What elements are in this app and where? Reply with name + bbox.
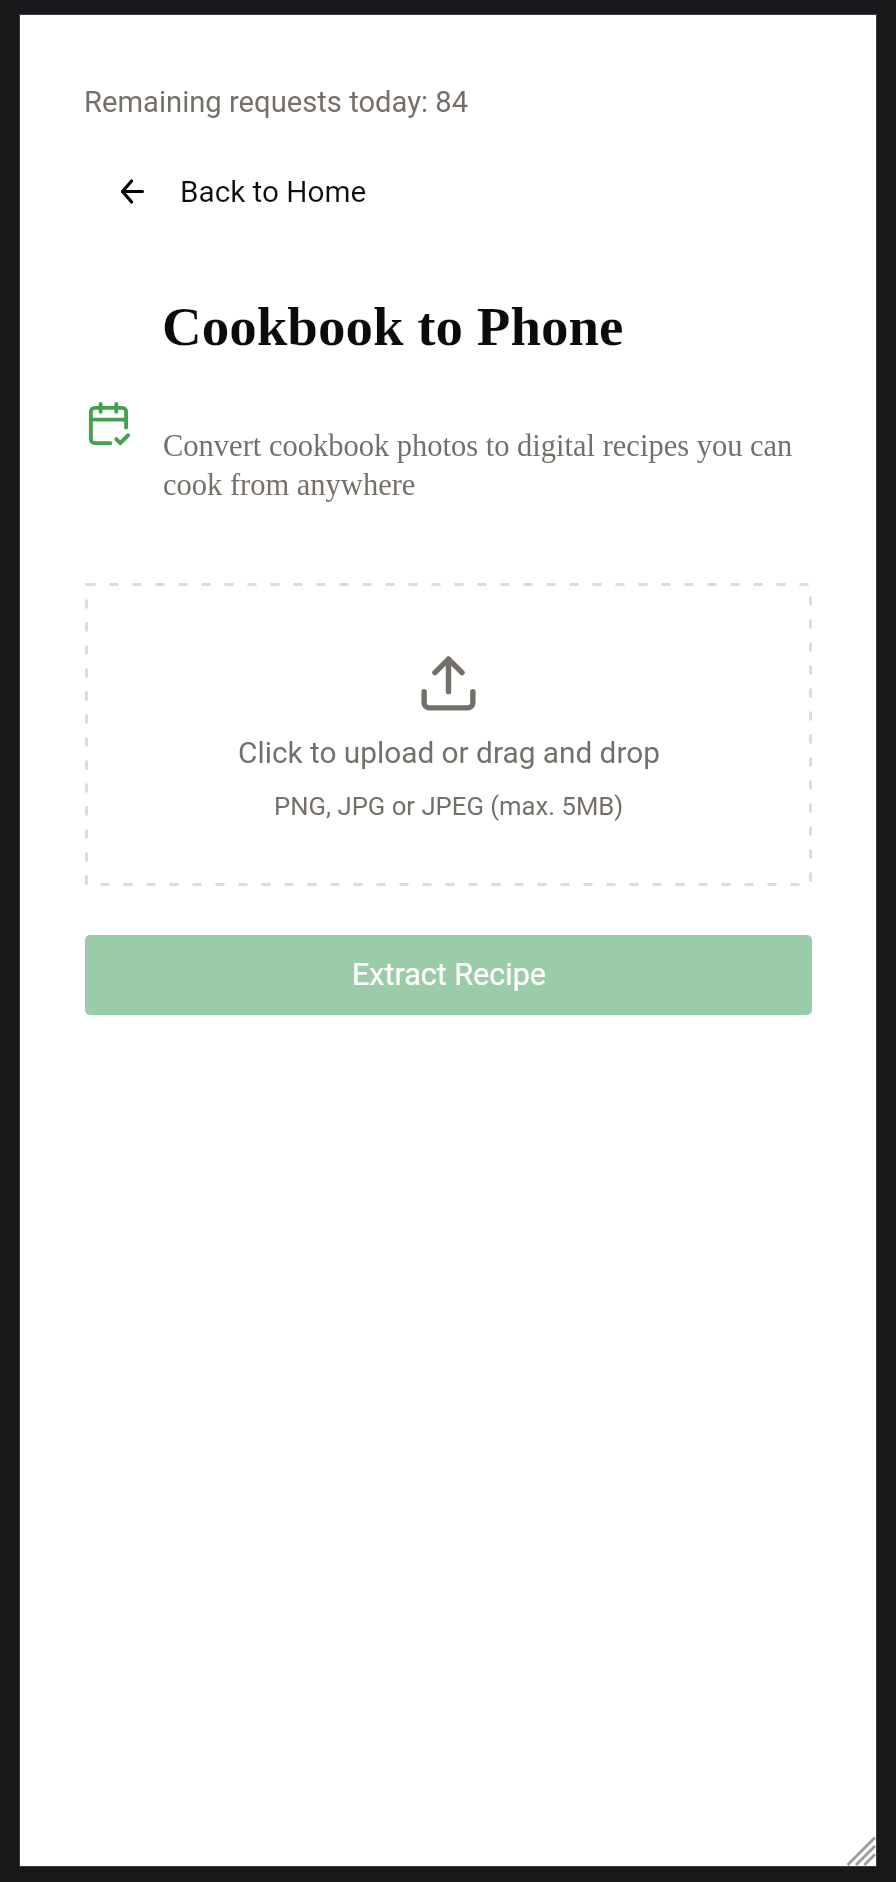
button[interactable]: Back [121, 174, 367, 209]
staticText: Convert cookbook photos to digital recip… [163, 429, 815, 502]
staticText: Remaining requests today: 84 [84, 85, 469, 119]
other: Upload [416, 651, 481, 716]
staticText: Back to Home [180, 174, 367, 209]
staticText: Click to upload or drag and drop [238, 735, 660, 770]
staticText: Cookbook to Phone [162, 296, 624, 357]
staticText: Extract Recipe [352, 957, 546, 993]
other: Back [121, 180, 144, 203]
staticText: PNG, JPG or JPEG (max. 5MB) [274, 791, 624, 821]
button[interactable]: Extract Recipe [85, 935, 812, 1015]
button[interactable]: Upload [85, 583, 812, 886]
